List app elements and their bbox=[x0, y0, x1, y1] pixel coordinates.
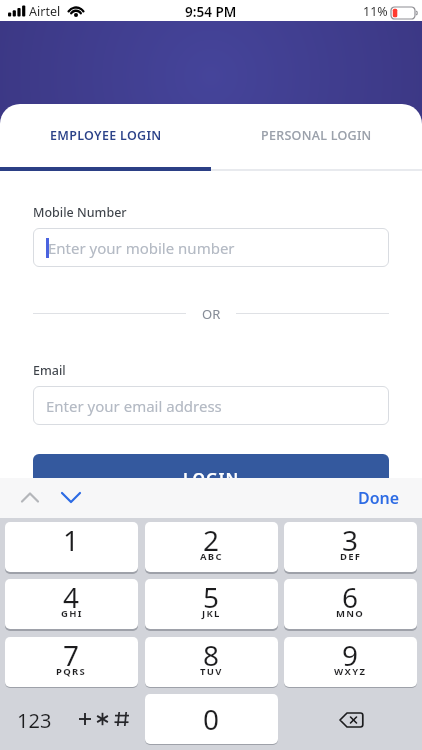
staticText: 0 bbox=[203, 700, 220, 738]
button[interactable]: 2 bbox=[145, 522, 278, 572]
staticText: 3 bbox=[342, 522, 359, 559]
staticText: 6 bbox=[342, 579, 359, 616]
staticText: 5 bbox=[203, 579, 220, 616]
staticText: LOGIN bbox=[183, 468, 240, 490]
staticText: OR bbox=[202, 305, 221, 323]
staticText: 11% bbox=[363, 3, 388, 20]
staticText: Enter your mobile number bbox=[48, 238, 235, 258]
staticText: JKL bbox=[202, 607, 221, 620]
staticText: PERSONAL LOGIN bbox=[261, 127, 372, 144]
button[interactable]: 7 bbox=[5, 637, 138, 687]
staticText: EMPLOYEE LOGIN bbox=[50, 127, 162, 144]
staticText: PQRS bbox=[56, 665, 87, 678]
button[interactable]: LOGIN bbox=[33, 454, 389, 500]
button[interactable]: Enter your email address bbox=[33, 386, 389, 425]
staticText: Email bbox=[33, 362, 66, 379]
staticText: MNO bbox=[336, 607, 365, 620]
button[interactable] bbox=[14, 486, 46, 510]
staticText: 4 bbox=[63, 579, 80, 616]
staticText: TUV bbox=[200, 665, 223, 678]
staticText: Done bbox=[358, 487, 400, 509]
button[interactable]: 9 bbox=[284, 637, 417, 687]
button[interactable] bbox=[6, 694, 66, 744]
staticText: 123 bbox=[17, 707, 52, 734]
staticText: 8 bbox=[203, 637, 220, 674]
staticText: 7 bbox=[63, 637, 80, 674]
button[interactable]: 3 bbox=[284, 522, 417, 572]
button[interactable]: Done bbox=[350, 483, 408, 513]
button[interactable]: 4 bbox=[5, 579, 138, 629]
button[interactable]: Enter your mobile number bbox=[33, 228, 389, 267]
button[interactable] bbox=[70, 694, 132, 744]
staticText: 2 bbox=[203, 522, 220, 559]
button[interactable]: 8 bbox=[145, 637, 278, 687]
staticText: GHI bbox=[61, 607, 83, 620]
button[interactable]: PERSONAL LOGIN bbox=[211, 104, 422, 167]
button[interactable]: 5 bbox=[145, 579, 278, 629]
staticText: WXYZ bbox=[334, 665, 367, 678]
button[interactable]: 6 bbox=[284, 579, 417, 629]
button[interactable] bbox=[55, 486, 87, 510]
staticText: Enter your email address bbox=[46, 396, 222, 416]
staticText: 9 bbox=[342, 637, 359, 674]
staticText: Airtel bbox=[29, 3, 61, 20]
staticText: 9:54 PM bbox=[185, 3, 237, 21]
staticText: 1 bbox=[63, 522, 80, 559]
staticText: DEF bbox=[340, 550, 362, 563]
button[interactable]: 0 bbox=[145, 694, 278, 744]
button[interactable]: 1 bbox=[5, 522, 138, 572]
button[interactable] bbox=[330, 694, 376, 744]
staticText: ABC bbox=[200, 550, 223, 563]
button[interactable]: EMPLOYEE LOGIN bbox=[0, 104, 211, 167]
staticText: Mobile Number bbox=[33, 204, 127, 221]
